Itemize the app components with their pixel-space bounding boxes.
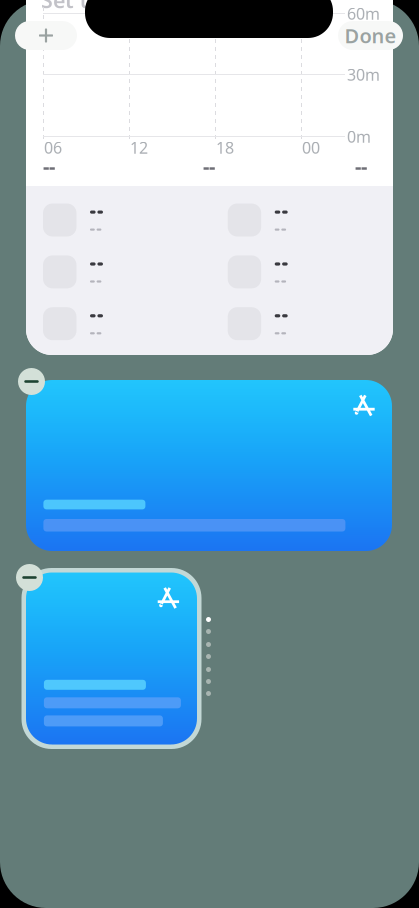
button[interactable]: Add widget bbox=[15, 21, 77, 50]
staticText: Set up Screen Time bbox=[41, 0, 239, 14]
staticText: 30m bbox=[347, 64, 380, 85]
button[interactable]: Remove widget bbox=[18, 368, 45, 395]
button[interactable]: App Store widget bbox=[26, 380, 392, 551]
button[interactable]: Done bbox=[338, 21, 403, 50]
staticText: 06 bbox=[44, 137, 62, 158]
staticText: Done bbox=[344, 22, 396, 49]
staticText: -- bbox=[43, 153, 55, 179]
staticText: 00 bbox=[302, 137, 320, 158]
button[interactable]: Remove widget bbox=[16, 564, 43, 591]
staticText: 0m bbox=[347, 126, 371, 147]
button[interactable]: App Store widget stack bbox=[21, 568, 201, 749]
staticText: 18 bbox=[216, 137, 234, 158]
staticText: -- bbox=[203, 153, 215, 179]
staticText: -- bbox=[355, 153, 367, 179]
staticText: 12 bbox=[130, 137, 148, 158]
staticText: 60m bbox=[347, 3, 380, 24]
